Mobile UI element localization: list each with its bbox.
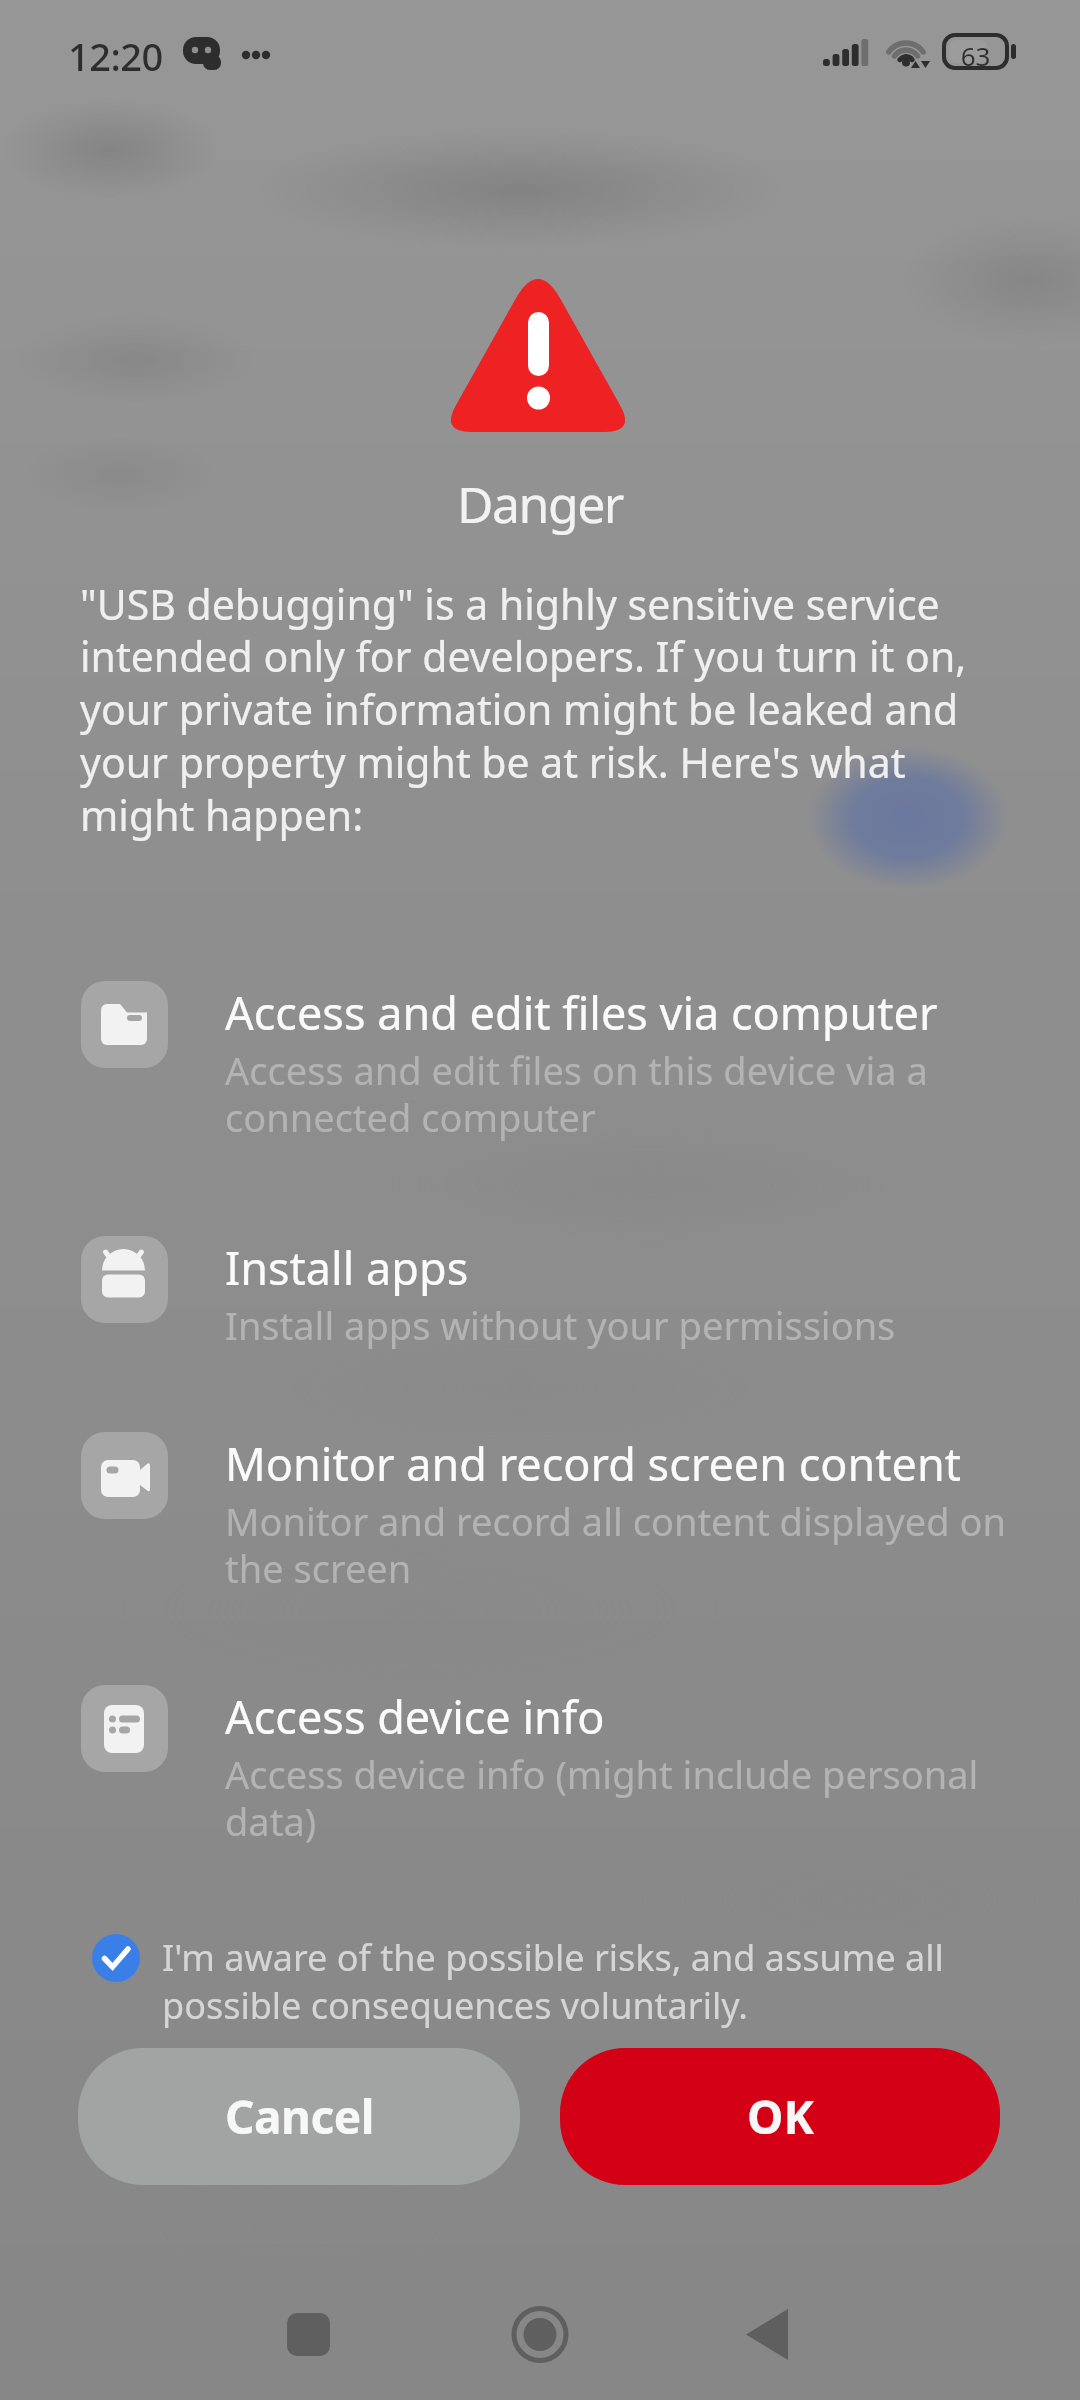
staticText: Monitor and record all content displayed… — [225, 1495, 1065, 1594]
staticText: Danger — [0, 470, 1080, 538]
staticText: Access and edit files on this device via… — [225, 1044, 1065, 1143]
staticText: Install apps without your permissions — [225, 1299, 1065, 1351]
staticText: Access device info (might include person… — [225, 1748, 1065, 1847]
button[interactable]: OK — [560, 2048, 1000, 2185]
staticText: Monitor and record screen content — [225, 1433, 962, 1494]
button[interactable]: Cancel — [78, 2048, 520, 2185]
staticText: 12:20 — [68, 30, 163, 82]
button[interactable] — [267, 2294, 349, 2376]
staticText: Access device info — [225, 1686, 605, 1747]
staticText: OK — [747, 2085, 814, 2148]
staticText: Access and edit files via computer — [225, 982, 938, 1043]
staticText: I'm aware of the possible risks, and ass… — [162, 1933, 1022, 2029]
button[interactable] — [499, 2294, 581, 2376]
button[interactable] — [80, 1922, 960, 2032]
button[interactable] — [726, 2294, 808, 2376]
staticText: 63 — [944, 38, 1007, 73]
staticText: "USB debugging" is a highly sensitive se… — [80, 576, 1060, 843]
staticText: Cancel — [225, 2085, 374, 2148]
staticText: Install apps — [225, 1237, 469, 1298]
